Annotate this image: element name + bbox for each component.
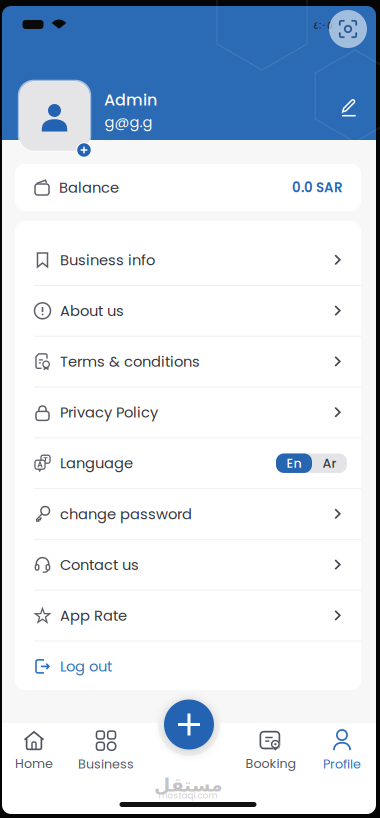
staticText: 0.0 SAR [292, 178, 343, 197]
button[interactable]: Business [71, 726, 141, 778]
button[interactable]: Screen capture [329, 10, 367, 48]
staticText: Language [60, 453, 133, 473]
button[interactable]: Ar [312, 453, 347, 473]
staticText: Ar [322, 454, 336, 472]
staticText: App Rate [60, 605, 127, 626]
button[interactable]: Booking [236, 726, 306, 778]
button[interactable]: About us [15, 285, 361, 336]
staticText: مستقل [153, 774, 222, 796]
staticText: Terms & conditions [60, 351, 200, 372]
staticText: Home [15, 755, 53, 772]
staticText: change password [60, 504, 192, 524]
button[interactable]: Edit profile [334, 94, 364, 122]
button[interactable]: Add profile photo [76, 142, 92, 158]
staticText: Profile [323, 755, 361, 773]
button[interactable]: Business info [15, 235, 361, 285]
staticText: Contact us [60, 554, 139, 575]
staticText: Balance [59, 177, 119, 198]
button[interactable]: Privacy Policy [15, 387, 361, 438]
button[interactable]: Log out [15, 641, 361, 692]
staticText: Business [78, 755, 134, 773]
button[interactable]: En [276, 453, 312, 473]
button[interactable]: Language [15, 438, 361, 489]
button[interactable]: Profile [307, 726, 377, 778]
staticText: En [286, 454, 301, 472]
button[interactable]: App Rate [15, 590, 361, 641]
button[interactable]: Balance [15, 164, 361, 211]
button[interactable]: change password [15, 489, 361, 539]
button[interactable]: Add [164, 699, 214, 749]
button[interactable]: Home [0, 726, 69, 778]
staticText: ٤:٠٥ [313, 17, 333, 32]
staticText: Log out [60, 656, 112, 677]
staticText: Admin [104, 89, 157, 111]
staticText: About us [60, 300, 124, 321]
staticText: Booking [245, 755, 296, 772]
staticText: mostaql.com [158, 789, 217, 801]
staticText: Privacy Policy [60, 402, 158, 423]
staticText: g@g.g [104, 112, 152, 132]
button[interactable]: Terms & conditions [15, 336, 361, 387]
button[interactable]: Contact us [15, 539, 361, 590]
staticText: Business info [60, 250, 155, 270]
